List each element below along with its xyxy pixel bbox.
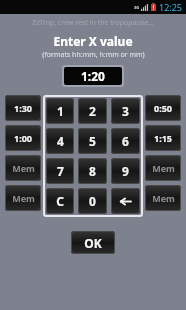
button[interactable]: Mem: [5, 155, 41, 181]
button[interactable]: 0: [78, 188, 107, 214]
staticText: 1:15: [154, 132, 172, 144]
staticText: Mem: [152, 162, 175, 174]
button[interactable]: Backspace: [111, 188, 140, 214]
staticText: 0: [89, 193, 96, 209]
staticText: 0:50: [154, 102, 172, 114]
button[interactable]: Mem: [5, 185, 41, 211]
staticText: 1: [57, 103, 64, 119]
staticText: 7: [57, 163, 64, 179]
staticText: 9: [122, 163, 129, 179]
button[interactable]: 1:30: [5, 95, 41, 121]
button[interactable]: 1:15: [145, 125, 181, 151]
button[interactable]: Mem: [145, 185, 181, 211]
staticText: 4: [57, 133, 64, 149]
staticText: 1:30: [14, 102, 32, 114]
button[interactable]: 9: [111, 158, 140, 184]
staticText: Mem: [152, 192, 175, 204]
staticText: 3G: [134, 5, 140, 10]
button[interactable]: 7: [46, 158, 74, 184]
staticText: 6: [122, 133, 129, 149]
button[interactable]: 1:00: [5, 125, 41, 151]
staticText: 3: [122, 103, 129, 119]
button[interactable]: C: [46, 188, 74, 214]
staticText: Enter X value: [53, 33, 133, 49]
button[interactable]: 0:50: [145, 95, 181, 121]
staticText: 2: [89, 103, 96, 119]
staticText: 8: [89, 163, 96, 179]
staticText: Mem: [12, 192, 35, 204]
staticText: (formats hh:mm, h:mm or mm): [42, 50, 145, 60]
button[interactable]: 8: [78, 158, 107, 184]
staticText: 1:20: [81, 68, 105, 84]
button[interactable]: OK: [71, 231, 115, 254]
button[interactable]: 1: [46, 98, 74, 124]
staticText: OK: [84, 235, 102, 251]
staticText: ZzTrop, crew rest in the tropopause...: [32, 18, 154, 28]
staticText: 12:25: [159, 1, 183, 13]
button[interactable]: 5: [78, 128, 107, 154]
button[interactable]: Mem: [145, 155, 181, 181]
staticText: Mem: [12, 162, 35, 174]
button[interactable]: 4: [46, 128, 74, 154]
staticText: 1:00: [14, 132, 32, 144]
staticText: C: [56, 193, 64, 209]
button[interactable]: 1:20: [64, 67, 122, 85]
button[interactable]: 6: [111, 128, 140, 154]
button[interactable]: 3: [111, 98, 140, 124]
staticText: 5: [89, 133, 96, 149]
button[interactable]: 2: [78, 98, 107, 124]
